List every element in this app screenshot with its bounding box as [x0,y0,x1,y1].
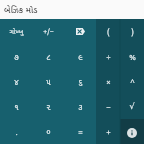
staticText: √ [129,102,135,111]
button[interactable]: ૨ [32,94,64,119]
staticText: . [15,126,18,137]
staticText: ૫ [46,76,51,87]
button[interactable]: Info [120,119,144,144]
staticText: ૯ [78,51,83,62]
button[interactable]: ૯ [64,44,96,69]
button[interactable]: % [120,44,144,69]
staticText: ^ [130,76,135,87]
button[interactable]: ૬ [64,69,96,94]
staticText: ૮ [46,51,51,62]
staticText: × [106,76,111,87]
staticText: ૪ [14,76,19,87]
button[interactable]: + [96,119,120,144]
button[interactable]: − [96,94,120,119]
button[interactable]: ^ [120,69,144,94]
button[interactable]: બેઝિક મોડ [0,0,144,19]
button[interactable]: ÷ [96,44,120,69]
staticText: % [129,51,136,62]
button[interactable]: × [96,69,120,94]
staticText: બેઝિક મોડ [4,4,38,16]
staticText: +/− [43,27,54,37]
staticText: ૬ [78,76,83,87]
staticText: + [106,126,111,137]
staticText: − [106,101,111,112]
button[interactable]: ચોખ્ખુ [0,19,32,44]
staticText: ÷ [106,51,111,62]
button[interactable]: ૧ [0,94,32,119]
button[interactable]: ૭ [0,44,32,69]
staticText: ૨ [46,101,51,112]
staticText: ૩ [78,101,83,112]
staticText: ૧ [14,101,19,112]
button[interactable]: Backspace [64,19,96,44]
staticText: ૭ [14,51,19,62]
staticText: ૦ [46,126,51,137]
button[interactable]: ૩ [64,94,96,119]
button[interactable]: . [0,119,32,144]
staticText: = [78,126,83,137]
staticText: ચોખ્ખુ [9,27,24,36]
button[interactable]: √ [120,94,144,119]
staticText: ( [107,26,110,37]
button[interactable]: ૮ [32,44,64,69]
button[interactable]: ૪ [0,69,32,94]
button[interactable]: ( [96,19,120,44]
button[interactable]: ૦ [32,119,64,144]
staticText: ) [131,26,134,37]
button[interactable]: +/− [32,19,64,44]
button[interactable]: = [64,119,96,144]
button[interactable]: ) [120,19,144,44]
button[interactable]: ૫ [32,69,64,94]
